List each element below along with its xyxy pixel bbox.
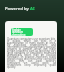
staticText: AI [30,6,35,12]
staticText: Explain quantum computing simply [12,28,32,36]
staticText: Powered by [5,6,30,12]
button[interactable]: Explain quantum computing simply [11,28,33,36]
staticText: Quantum computers use quantum bits, or q… [7,37,56,69]
